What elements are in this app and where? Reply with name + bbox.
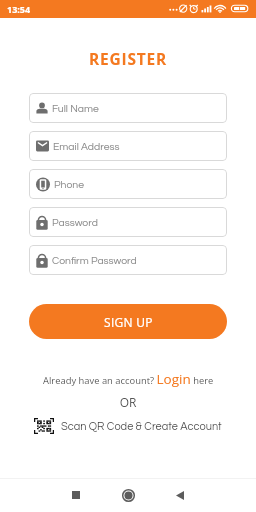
button[interactable]: Email Address (29, 131, 227, 161)
staticText: OR (0, 394, 256, 410)
staticText: Full Name (52, 103, 99, 114)
button[interactable]: Scan QR Code & Create Account (0, 418, 256, 434)
button[interactable]: Recent apps (63, 482, 89, 508)
staticText: REGISTER (0, 48, 256, 69)
staticText: SIGN UP (104, 314, 153, 330)
button[interactable]: Back (167, 482, 193, 508)
staticText: Confirm Password (52, 255, 137, 266)
button[interactable]: Confirm Password (29, 245, 227, 275)
staticText: Scan QR Code & Create Account (61, 421, 222, 432)
staticText: Password (52, 217, 98, 228)
button[interactable]: Phone (29, 169, 227, 199)
staticText: Phone (54, 179, 84, 190)
button[interactable]: Home (115, 482, 141, 508)
staticText: 13:54 (7, 3, 31, 15)
button[interactable]: SIGN UP (29, 304, 227, 339)
staticText: Email Address (53, 141, 120, 152)
button[interactable]: Password (29, 207, 227, 237)
button[interactable]: Full Name (29, 93, 227, 123)
button[interactable]: Already have an account? Login here (43, 370, 214, 388)
